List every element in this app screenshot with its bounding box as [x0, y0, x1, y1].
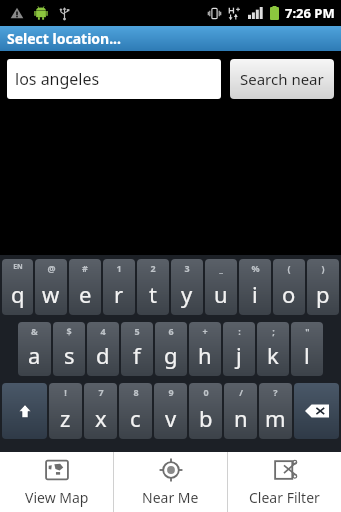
- staticText: d: [96, 340, 110, 370]
- button[interactable]: 6: [155, 322, 187, 376]
- staticText: u: [214, 279, 228, 309]
- staticText: x: [95, 403, 107, 433]
- staticText: v: [165, 403, 177, 433]
- staticText: p: [316, 279, 330, 309]
- staticText: +: [202, 325, 208, 337]
- staticText: 7:26 PM: [285, 4, 335, 22]
- staticText: los angeles: [15, 68, 100, 90]
- button[interactable]: :: [223, 322, 255, 376]
- staticText: 5: [134, 325, 140, 337]
- staticText: 7: [98, 386, 104, 398]
- staticText: #: [82, 262, 88, 274]
- button[interactable]: Shift: [2, 383, 47, 439]
- staticText: %: [251, 262, 260, 274]
- button[interactable]: 5: [121, 322, 153, 376]
- staticText: ;: [272, 325, 275, 337]
- button[interactable]: /: [224, 383, 257, 439]
- button[interactable]: _: [205, 259, 237, 315]
- staticText: z: [60, 403, 71, 433]
- button[interactable]: 8: [119, 383, 152, 439]
- staticText: &: [31, 325, 38, 337]
- staticText: 4: [100, 325, 106, 337]
- button[interactable]: 2: [137, 259, 169, 315]
- staticText: t: [149, 279, 157, 309]
- staticText: k: [267, 340, 279, 370]
- staticText: $: [66, 325, 72, 337]
- staticText: l: [304, 340, 310, 370]
- staticText: 0: [203, 386, 209, 398]
- staticText: r: [114, 279, 124, 309]
- button[interactable]: @: [35, 259, 67, 315]
- staticText: s: [64, 340, 75, 370]
- button[interactable]: !: [49, 383, 82, 439]
- staticText: 6: [168, 325, 174, 337]
- staticText: 3: [184, 262, 190, 274]
- staticText: m: [265, 403, 286, 433]
- button[interactable]: 0: [189, 383, 222, 439]
- button[interactable]: 1: [103, 259, 135, 315]
- staticText: e: [79, 279, 92, 309]
- button[interactable]: ): [307, 259, 339, 315]
- staticText: !: [64, 386, 67, 398]
- button[interactable]: #: [69, 259, 101, 315]
- staticText: /: [239, 386, 243, 398]
- button[interactable]: %: [239, 259, 271, 315]
- button[interactable]: &: [18, 322, 51, 376]
- staticText: EN: [13, 262, 23, 272]
- staticText: g: [164, 340, 178, 370]
- button[interactable]: ": [291, 322, 323, 376]
- staticText: a: [28, 340, 41, 370]
- button[interactable]: 9: [154, 383, 187, 439]
- staticText: Search near: [240, 69, 324, 89]
- staticText: o: [282, 279, 296, 309]
- staticText: ?: [273, 386, 278, 398]
- staticText: Near Me: [142, 488, 199, 507]
- button[interactable]: Near Me: [114, 452, 227, 512]
- staticText: n: [234, 403, 248, 433]
- staticText: ): [321, 262, 325, 274]
- staticText: 2: [150, 262, 156, 274]
- staticText: View Map: [25, 488, 89, 507]
- staticText: f: [133, 340, 141, 370]
- staticText: Select location...: [7, 29, 121, 48]
- staticText: h: [198, 340, 212, 370]
- button[interactable]: Backspace: [294, 383, 339, 439]
- staticText: q: [11, 279, 25, 309]
- staticText: c: [130, 403, 141, 433]
- button[interactable]: EN: [2, 259, 33, 315]
- staticText: i: [252, 279, 258, 309]
- button[interactable]: Search near: [230, 59, 334, 99]
- button[interactable]: ;: [257, 322, 289, 376]
- staticText: 8: [133, 386, 139, 398]
- button[interactable]: los angeles: [7, 59, 221, 99]
- button[interactable]: 4: [87, 322, 119, 376]
- staticText: w: [42, 279, 60, 309]
- button[interactable]: (: [273, 259, 305, 315]
- button[interactable]: 3: [171, 259, 203, 315]
- button[interactable]: +: [189, 322, 221, 376]
- staticText: _: [219, 262, 223, 274]
- staticText: Clear Filter: [249, 488, 320, 507]
- staticText: (: [287, 262, 291, 274]
- button[interactable]: 7: [84, 383, 117, 439]
- button[interactable]: View Map: [0, 452, 113, 512]
- staticText: @: [47, 262, 56, 274]
- button[interactable]: $: [53, 322, 85, 376]
- button[interactable]: ?: [259, 383, 292, 439]
- staticText: 9: [168, 386, 174, 398]
- staticText: j: [236, 340, 242, 370]
- staticText: y: [181, 279, 193, 309]
- staticText: ": [305, 325, 310, 337]
- button[interactable]: Clear Filter: [228, 452, 341, 512]
- staticText: 1: [116, 262, 122, 274]
- staticText: b: [199, 403, 213, 433]
- staticText: :: [238, 325, 241, 337]
